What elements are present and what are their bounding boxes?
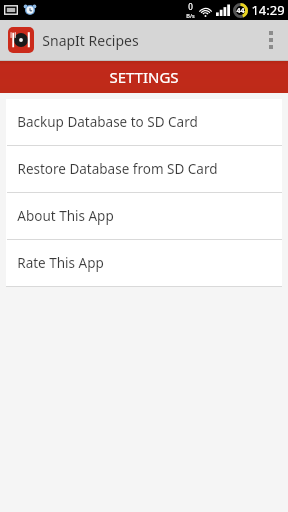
button[interactable]: Rate This App xyxy=(6,240,282,286)
staticText: 14:29 xyxy=(251,1,285,19)
button[interactable]: Restore Database from SD Card xyxy=(6,146,282,192)
staticText: SETTINGS xyxy=(109,67,179,87)
staticText: Restore Database from SD Card xyxy=(17,160,218,178)
staticText: About This App xyxy=(17,207,114,225)
staticText: B/s xyxy=(186,12,195,19)
button[interactable]: App icon xyxy=(8,27,34,53)
button[interactable]: More options xyxy=(254,20,288,60)
button[interactable]: Backup Database to SD Card xyxy=(6,99,282,145)
staticText: 44 xyxy=(236,6,245,16)
staticText: Rate This App xyxy=(17,254,104,272)
staticText: SnapIt Recipes xyxy=(42,31,139,50)
button[interactable]: About This App xyxy=(6,193,282,239)
staticText: 0 xyxy=(188,1,193,12)
staticText: Backup Database to SD Card xyxy=(17,113,198,131)
